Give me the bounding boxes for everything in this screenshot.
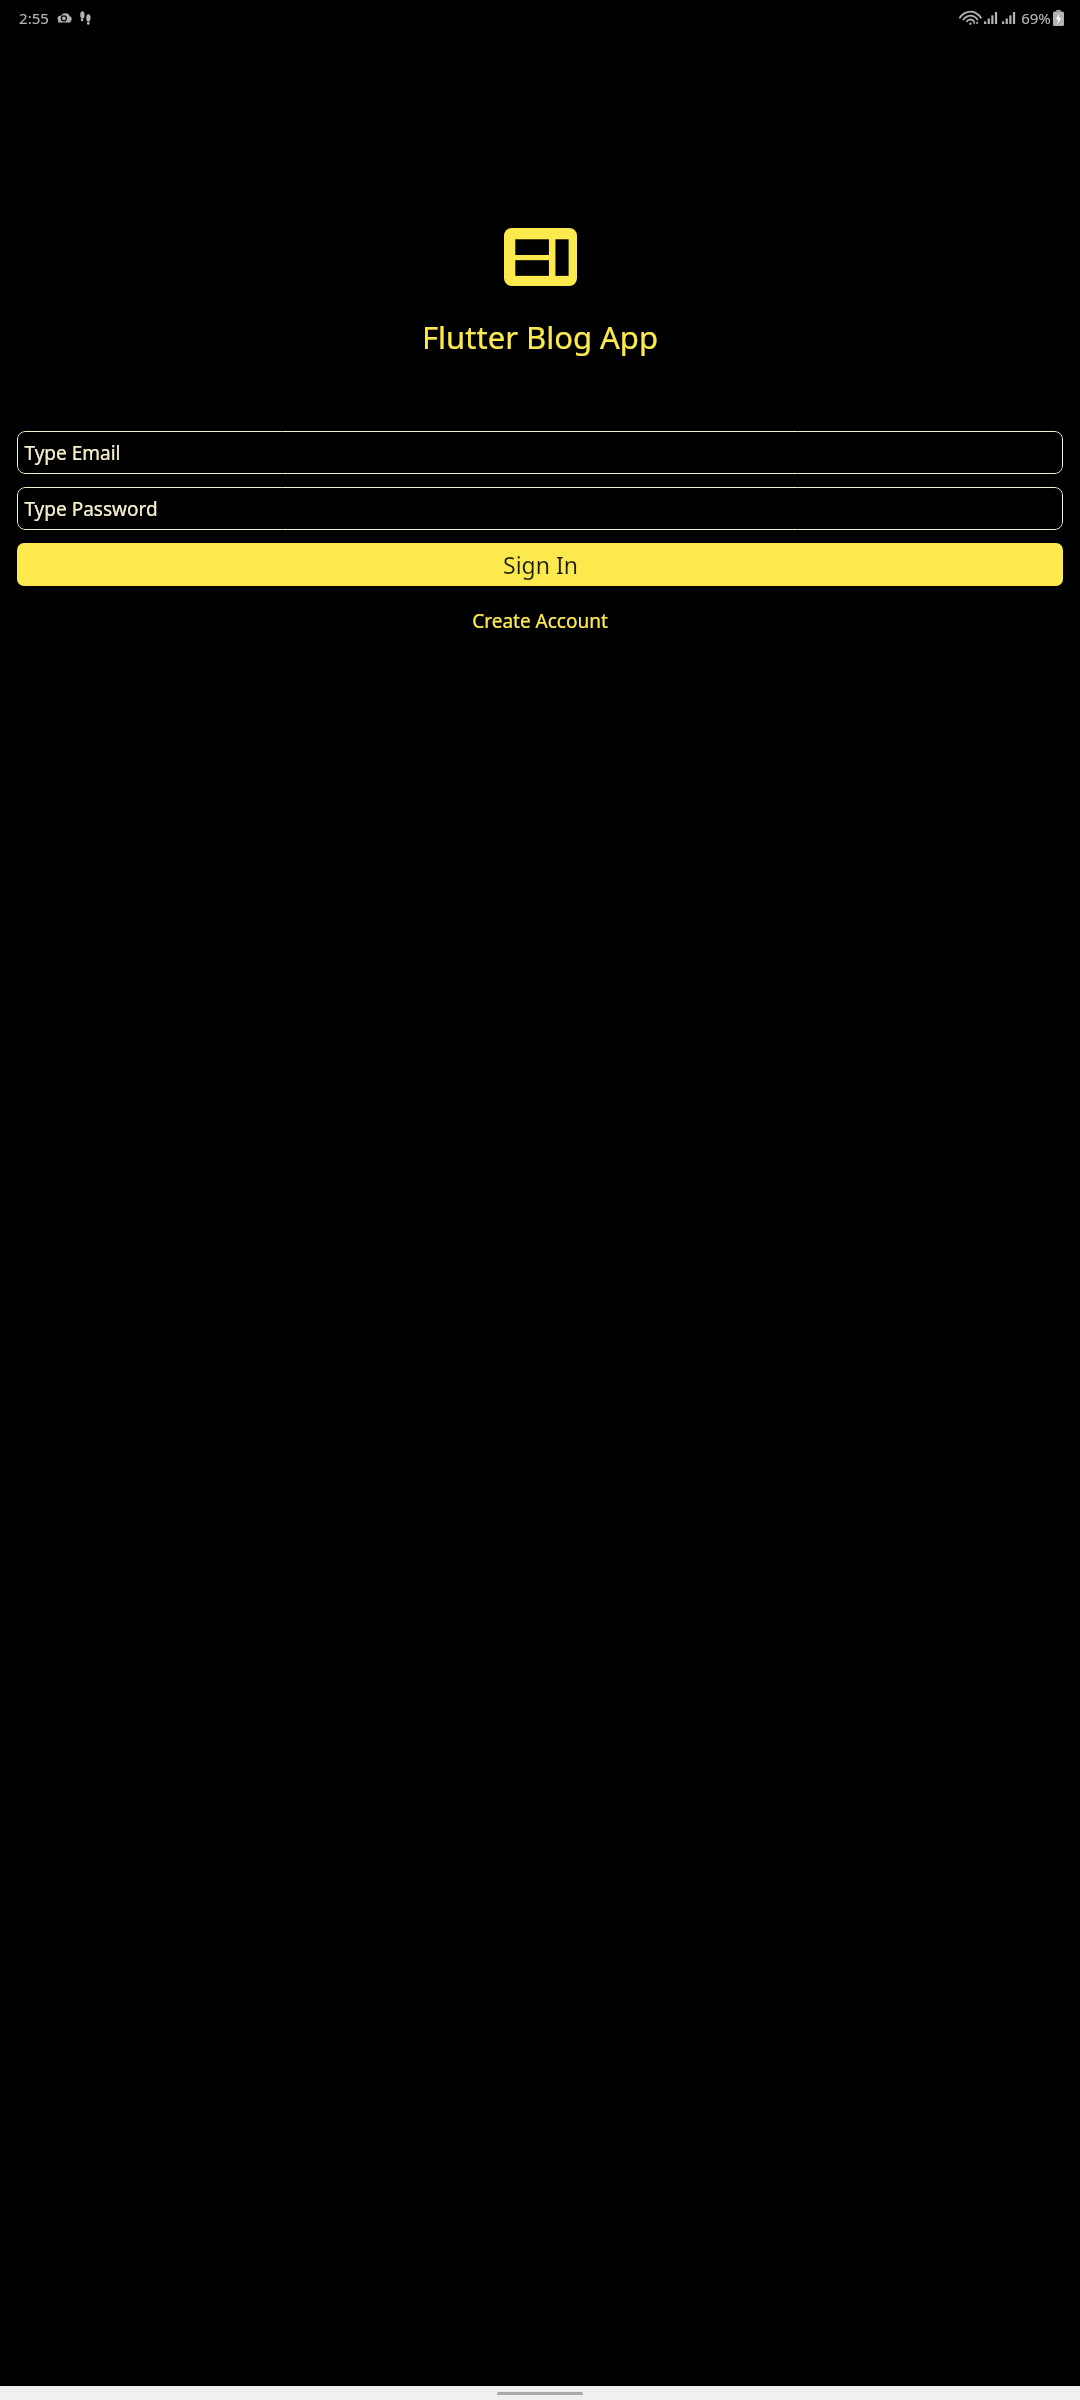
other: Home gesture handle — [497, 2392, 583, 2395]
button[interactable]: Create Account — [0, 602, 1080, 640]
staticText: Sign In — [503, 549, 578, 580]
staticText: Flutter Blog App — [0, 316, 1080, 358]
other: Flutter Blog App logo — [504, 228, 577, 286]
button[interactable]: Type Password input field — [17, 487, 1063, 530]
staticText: 2:55 — [19, 8, 49, 28]
staticText: 69% — [1021, 8, 1051, 28]
staticText: Create Account — [472, 608, 608, 634]
staticText: Type Email — [24, 440, 121, 466]
staticText: Type Password — [24, 496, 158, 522]
button[interactable]: Type Email input field — [17, 431, 1063, 474]
button[interactable]: Sign In — [17, 543, 1063, 586]
